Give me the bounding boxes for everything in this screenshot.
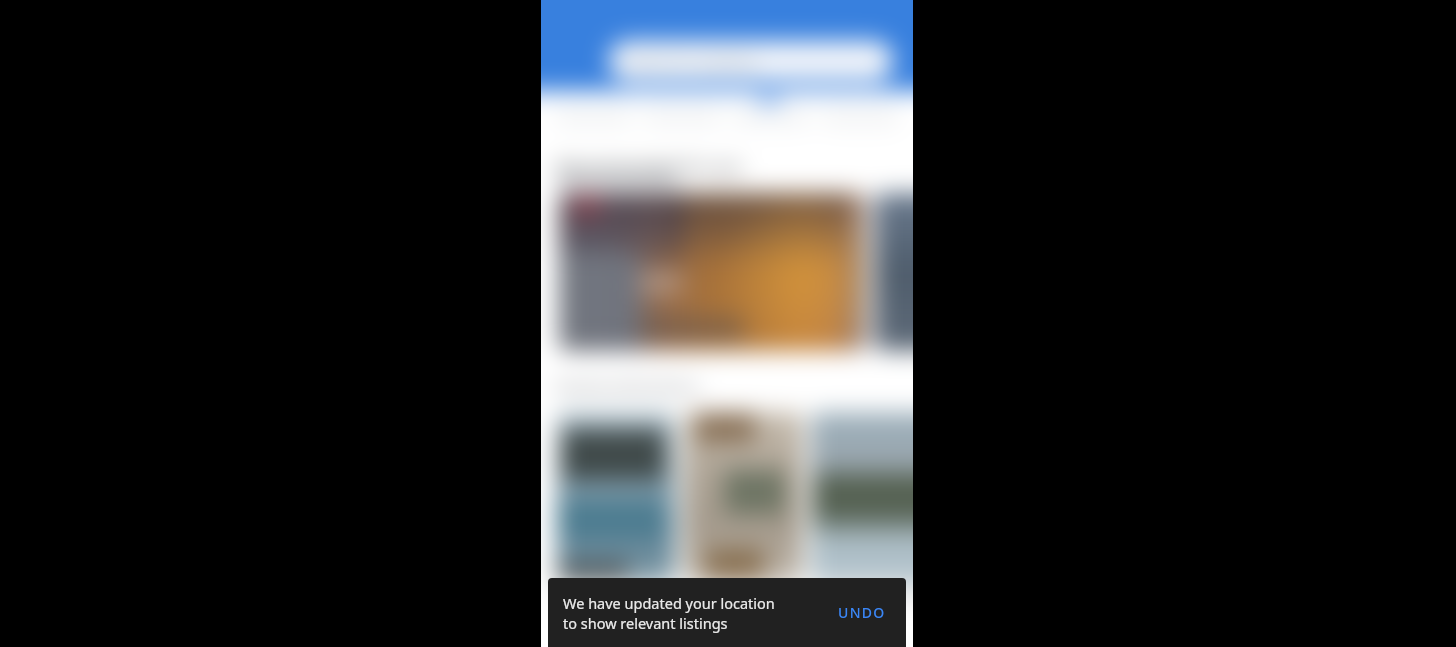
button[interactable]: Voice search xyxy=(755,96,783,124)
button[interactable] xyxy=(684,412,802,617)
staticText: We have updated your location to show re… xyxy=(563,593,789,633)
button[interactable]: Search for anything xyxy=(609,41,893,81)
button[interactable] xyxy=(559,193,867,351)
staticText: UNDO xyxy=(838,603,886,622)
button[interactable] xyxy=(731,104,812,128)
button[interactable] xyxy=(875,193,913,351)
button[interactable] xyxy=(820,104,901,128)
button[interactable] xyxy=(642,104,723,128)
button[interactable] xyxy=(811,412,913,617)
staticText: Search for anything xyxy=(627,52,756,71)
button[interactable] xyxy=(553,104,634,128)
button[interactable]: UNDO xyxy=(828,595,896,630)
staticText: Recommended for you xyxy=(557,155,743,178)
button[interactable] xyxy=(557,412,675,617)
